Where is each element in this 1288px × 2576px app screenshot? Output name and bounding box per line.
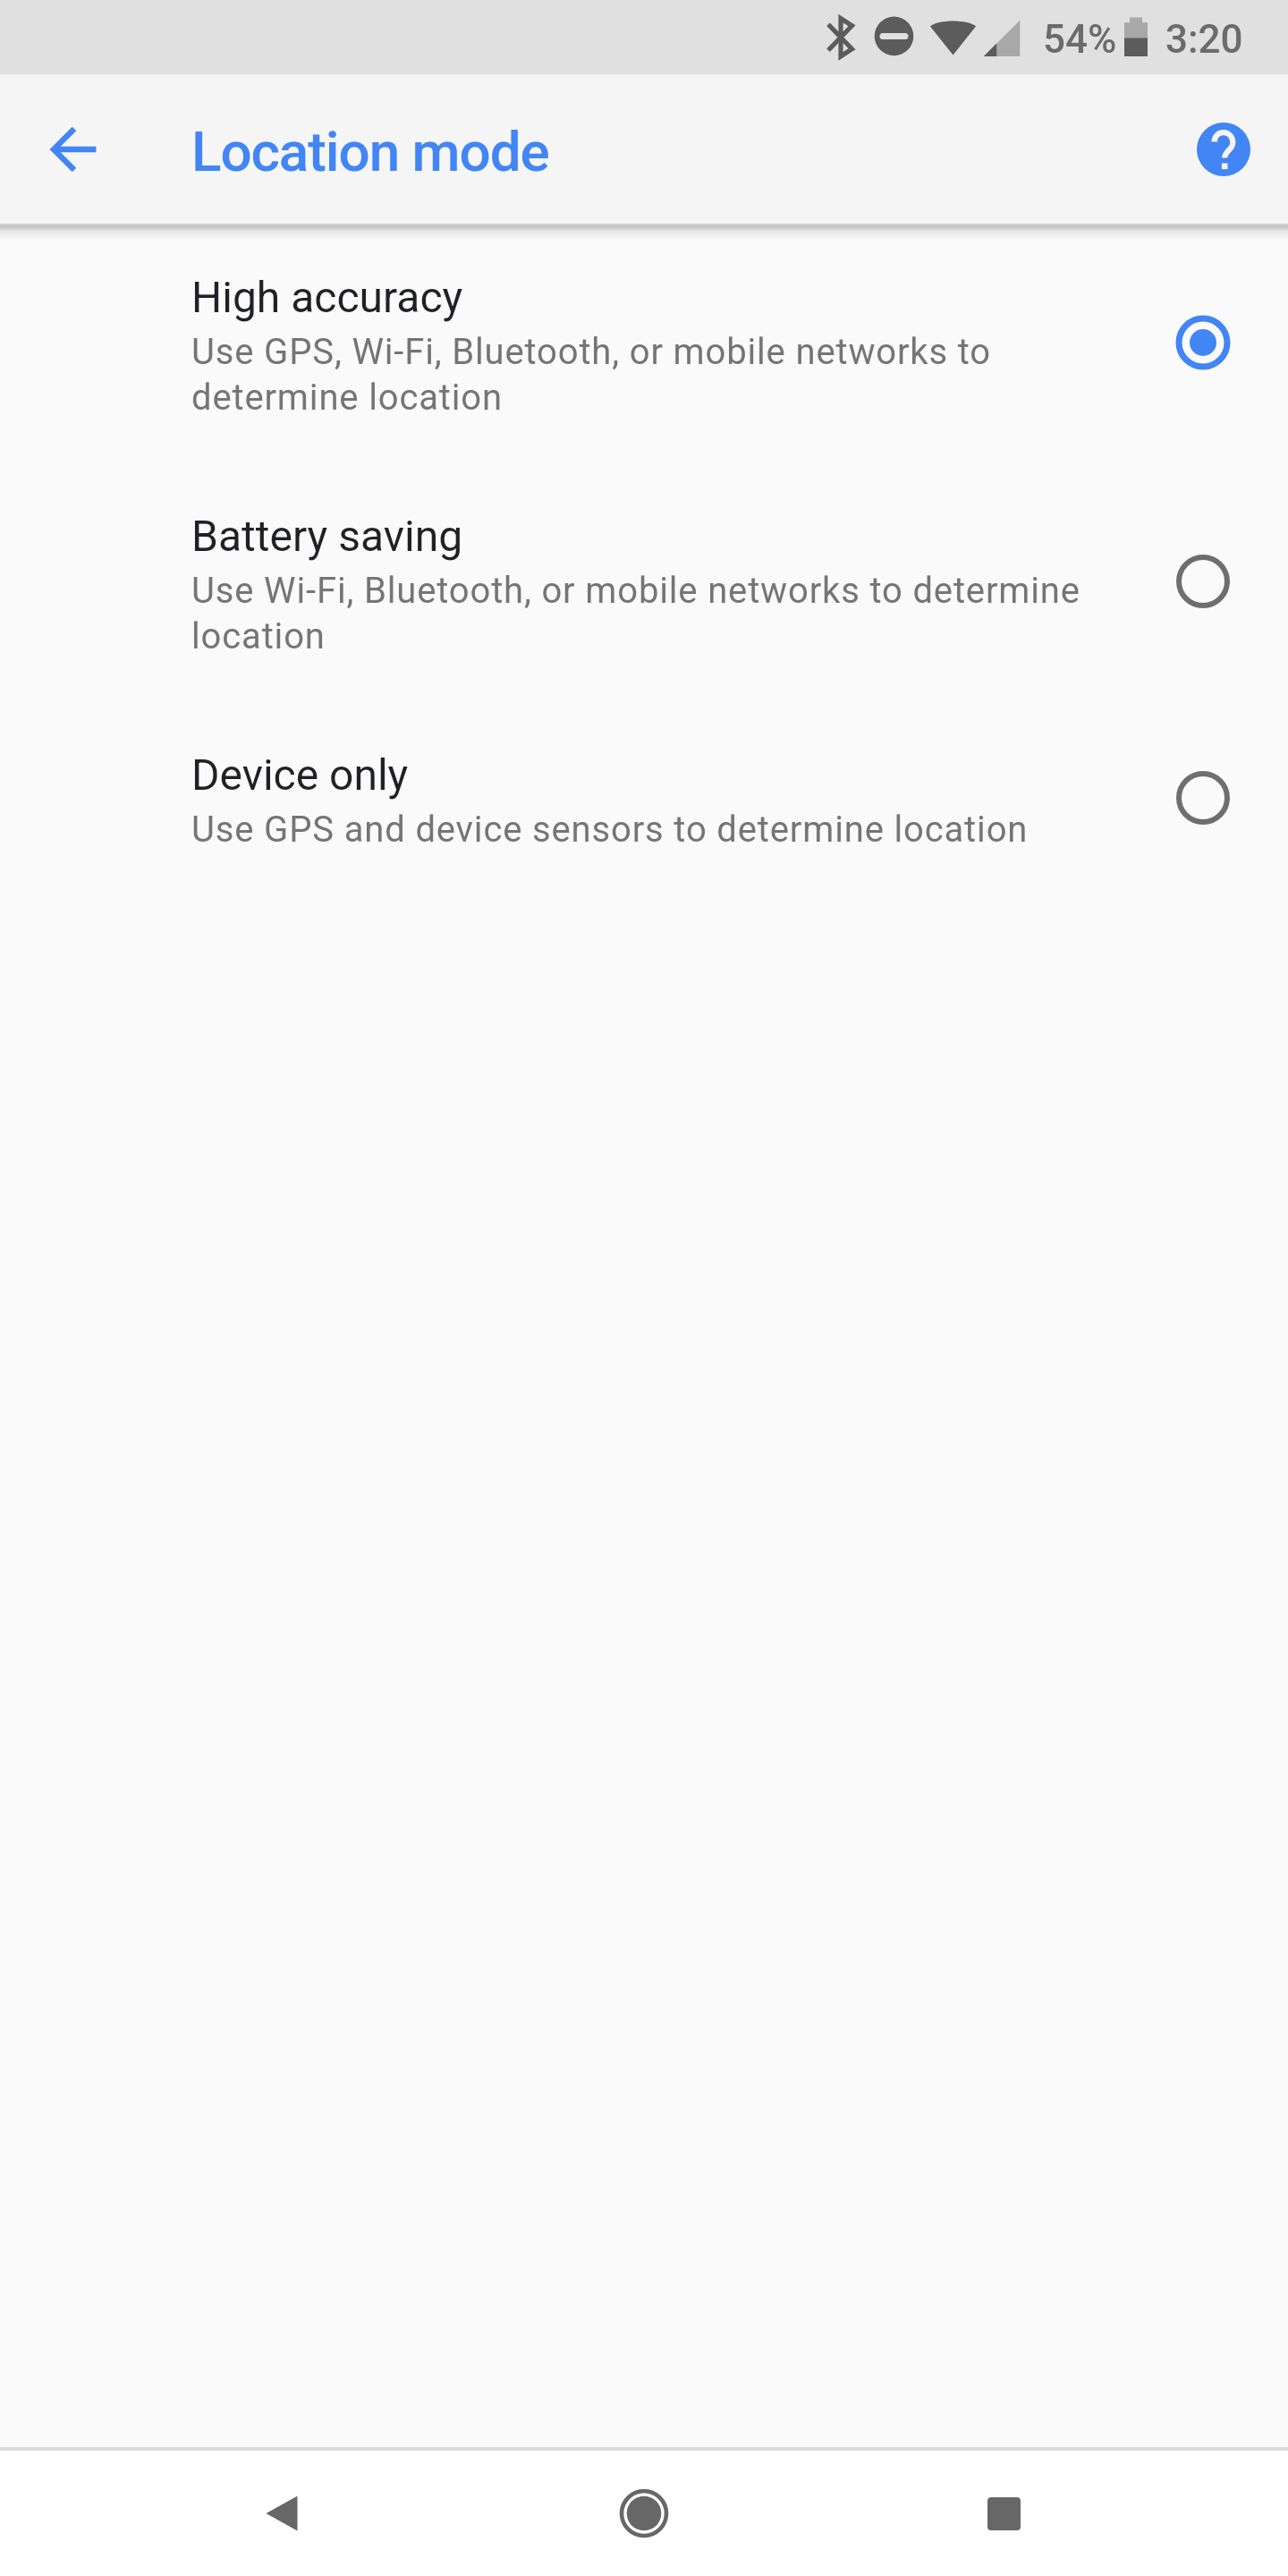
- staticText: 54%: [1043, 16, 1117, 63]
- button[interactable]: Recent apps: [923, 2451, 1084, 2576]
- staticText: Device only: [191, 750, 409, 800]
- button[interactable]: Navigate up: [32, 106, 118, 192]
- button[interactable]: Back: [202, 2451, 363, 2576]
- staticText: High accuracy: [191, 272, 463, 322]
- button[interactable]: High accuracy: [0, 224, 1288, 462]
- button[interactable]: Battery saving: [0, 462, 1288, 701]
- button[interactable]: Help: [1181, 106, 1267, 192]
- staticText: Location mode: [191, 119, 549, 184]
- button[interactable]: Device only: [0, 701, 1288, 940]
- staticText: 3:20: [1165, 16, 1243, 63]
- staticText: Use GPS and device sensors to determine …: [191, 809, 1029, 851]
- staticText: Use GPS, Wi-Fi, Bluetooth, or mobile net…: [191, 331, 1118, 419]
- staticText: Battery saving: [191, 511, 463, 561]
- button[interactable]: Home: [563, 2451, 724, 2576]
- staticText: Use Wi-Fi, Bluetooth, or mobile networks…: [191, 570, 1118, 657]
